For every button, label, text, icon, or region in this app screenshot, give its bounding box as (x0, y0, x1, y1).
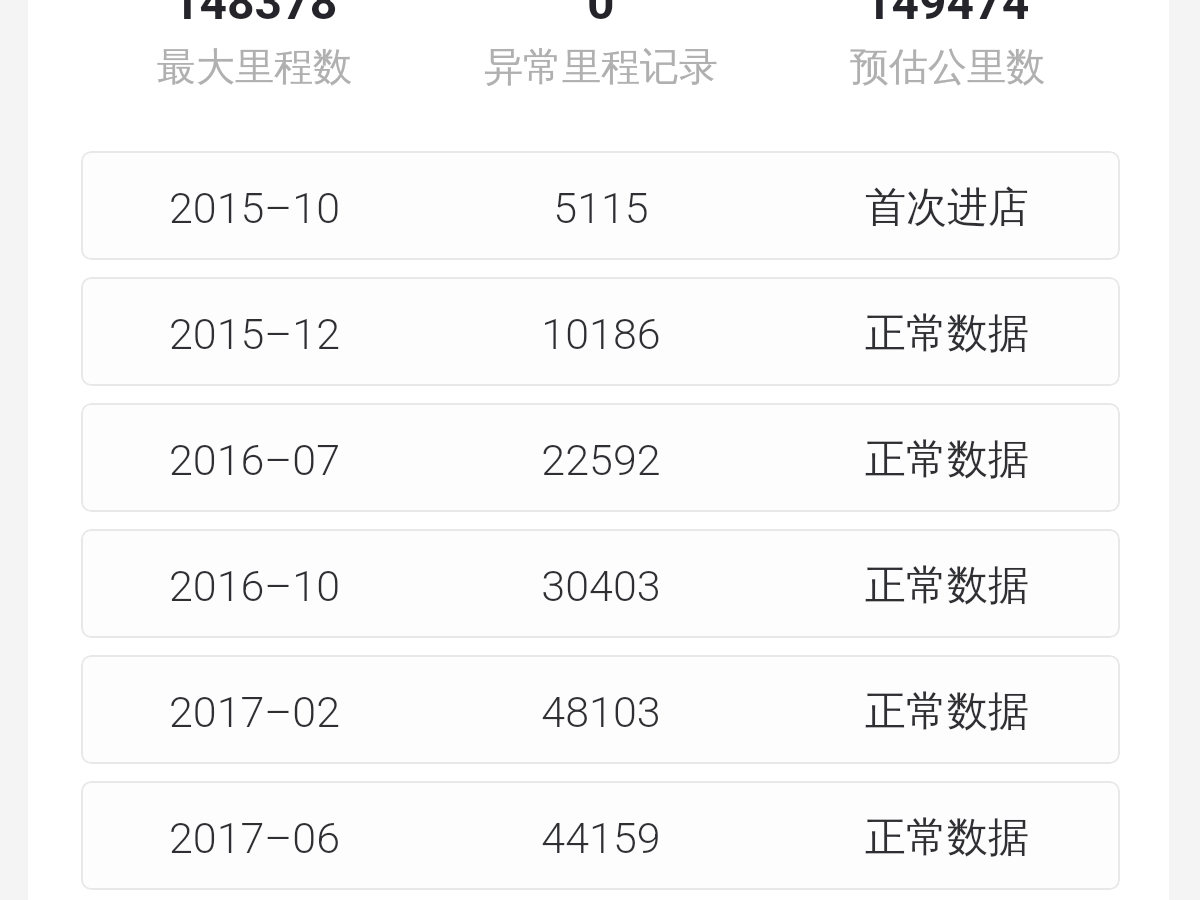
staticText: 2017–06 (81, 813, 428, 863)
staticText: 22592 (428, 435, 774, 485)
staticText: 148378 (172, 0, 338, 30)
button[interactable]: 2017–06 (81, 781, 1120, 890)
button[interactable]: 0 (428, 0, 774, 91)
staticText: 最大里程数 (157, 42, 352, 91)
button[interactable]: 2015–10 (81, 151, 1120, 260)
staticText: 0 (587, 0, 615, 30)
button[interactable]: 2016–07 (81, 403, 1120, 512)
staticText: 48103 (428, 687, 774, 737)
button[interactable]: 2016–10 (81, 529, 1120, 638)
staticText: 2017–02 (81, 687, 428, 737)
staticText: 首次进店 (774, 182, 1120, 234)
button[interactable]: 148378 (81, 0, 428, 91)
staticText: 2015–10 (81, 183, 428, 233)
staticText: 2016–10 (81, 561, 428, 611)
staticText: 44159 (428, 813, 774, 863)
staticText: 5115 (428, 183, 774, 233)
staticText: 10186 (428, 309, 774, 359)
staticText: 2015–12 (81, 309, 428, 359)
staticText: 30403 (428, 561, 774, 611)
staticText: 2016–07 (81, 435, 428, 485)
button[interactable]: 2015–12 (81, 277, 1120, 386)
staticText: 预估公里数 (850, 42, 1045, 91)
staticText: 异常里程记录 (484, 42, 718, 91)
staticText: 正常数据 (774, 686, 1120, 738)
button[interactable]: 2017–02 (81, 655, 1120, 764)
staticText: 正常数据 (774, 434, 1120, 486)
button[interactable]: 149474 (774, 0, 1120, 91)
staticText: 149474 (864, 0, 1030, 30)
staticText: 正常数据 (774, 560, 1120, 612)
staticText: 正常数据 (774, 812, 1120, 864)
staticText: 正常数据 (774, 308, 1120, 360)
